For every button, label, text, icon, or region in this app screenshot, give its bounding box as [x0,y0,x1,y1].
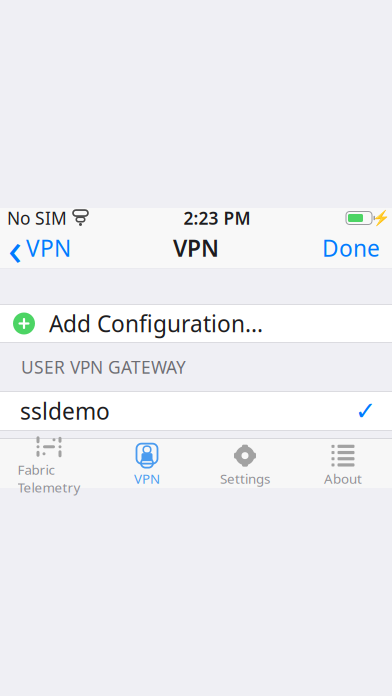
staticText: ssldemo [20,396,110,426]
button[interactable]: ssldemo [0,392,392,430]
staticText: Settings [220,470,270,487]
button[interactable]: Done [310,228,392,268]
staticText: 2:23 PM [183,206,250,229]
staticText: VPN [26,233,71,263]
button[interactable]: VPN [98,439,196,488]
button[interactable]: Settings [196,439,294,488]
staticText: No SIM [7,206,67,229]
button[interactable]: About [294,439,392,488]
staticText: ‹ [8,218,22,278]
staticText: ✓ [355,397,376,425]
button[interactable]: Fabric Telemetry [0,439,98,488]
staticText: USER VPN GATEWAY [21,355,186,378]
staticText: VPN [134,470,160,487]
button[interactable]: ‹ [0,228,81,268]
staticText: ⚡ [371,210,389,226]
staticText: VPN [173,233,219,263]
staticText: Add Configuration... [49,308,263,338]
staticText: About [324,470,362,487]
staticText: Done [322,233,380,263]
staticText: Fabric Telemetry [17,461,80,496]
button[interactable]: Add Configuration... [0,305,392,342]
